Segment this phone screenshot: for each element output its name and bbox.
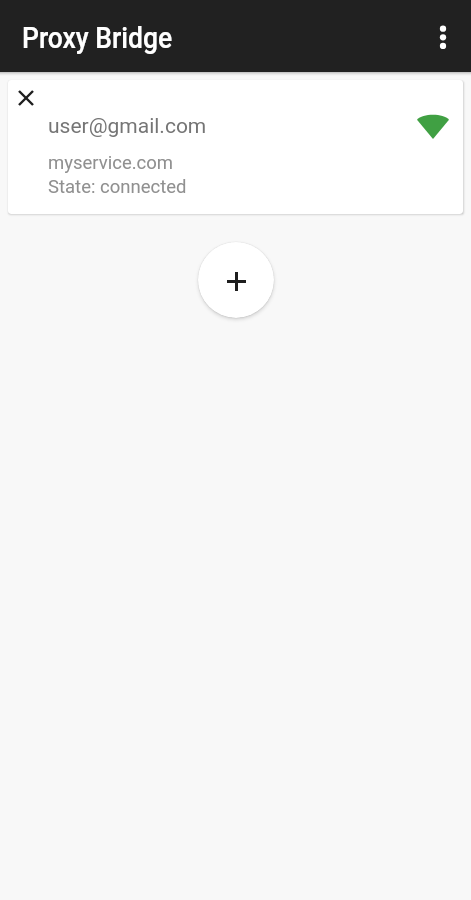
button[interactable]: Close [8, 80, 463, 214]
staticText: user@gmail.com [48, 114, 207, 139]
button[interactable]: Add [198, 242, 274, 318]
button[interactable]: More options [422, 16, 464, 58]
button[interactable]: Close [9, 81, 43, 115]
staticText: State: connected [48, 176, 187, 198]
staticText: myservice.com [48, 152, 174, 174]
staticText: Proxy Bridge [22, 21, 172, 55]
